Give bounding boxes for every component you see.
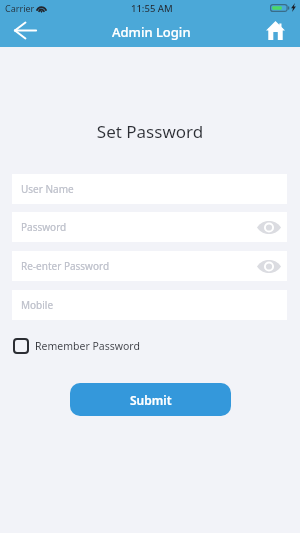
button[interactable]: Re-enter Password — [12, 251, 287, 281]
staticText: Set Password — [0, 120, 300, 143]
button[interactable]: Submit — [70, 383, 231, 416]
staticText: 11:55 AM — [131, 2, 173, 15]
button[interactable]: Back — [5, 15, 45, 46]
staticText: Re-enter Password — [21, 259, 110, 273]
button[interactable]: Mobile — [12, 290, 287, 320]
button[interactable]: User Name — [12, 174, 287, 204]
staticText: Remember Password — [35, 339, 140, 353]
staticText: User Name — [21, 182, 74, 196]
staticText: Mobile — [21, 298, 54, 312]
button[interactable]: Password — [12, 212, 287, 242]
button[interactable]: Remember Password — [13, 338, 140, 354]
staticText: Admin Login — [112, 23, 191, 41]
staticText: Submit — [130, 392, 172, 408]
button[interactable]: Show password — [251, 251, 287, 281]
staticText: Carrier — [5, 2, 35, 14]
button[interactable]: Home — [258, 15, 293, 46]
button[interactable]: Show password — [251, 212, 287, 242]
staticText: Password — [21, 220, 67, 234]
